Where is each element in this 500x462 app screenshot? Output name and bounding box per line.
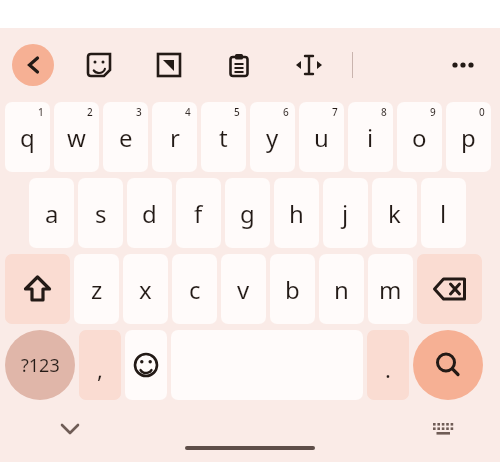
button[interactable]: Search [413, 330, 483, 400]
button[interactable]: Clipboard [222, 48, 256, 82]
button[interactable]: Move cursor [292, 48, 326, 82]
button[interactable]: Switch keyboard [426, 414, 460, 448]
staticText: k [388, 197, 401, 230]
button[interactable]: o [397, 102, 442, 172]
button[interactable]: y [250, 102, 295, 172]
staticText: 2 [87, 105, 93, 119]
button[interactable]: Backspace [417, 254, 482, 324]
button[interactable]: GIF [152, 48, 186, 82]
button[interactable]: Hide keyboard [52, 413, 88, 449]
staticText: a [45, 197, 59, 230]
button[interactable]: u [299, 102, 344, 172]
button[interactable]: k [372, 178, 417, 248]
button[interactable]: m [368, 254, 413, 324]
staticText: 0 [479, 105, 485, 119]
staticText: m [379, 273, 402, 306]
staticText: x [139, 273, 152, 306]
staticText: 9 [430, 105, 436, 119]
button[interactable]: s [78, 178, 123, 248]
staticText: 7 [332, 105, 338, 119]
staticText: u [314, 121, 329, 154]
staticText: n [334, 273, 349, 306]
button[interactable]: q [5, 102, 50, 172]
button[interactable]: , [79, 330, 121, 400]
staticText: f [194, 197, 203, 230]
button[interactable]: d [127, 178, 172, 248]
staticText: z [91, 273, 103, 306]
button[interactable]: Back [12, 44, 54, 86]
button[interactable]: More options [446, 48, 480, 82]
button[interactable]: a [29, 178, 74, 248]
staticText: j [342, 197, 349, 230]
button[interactable]: h [274, 178, 319, 248]
button[interactable]: x [123, 254, 168, 324]
staticText: t [219, 121, 228, 154]
button[interactable]: Shift [5, 254, 70, 324]
staticText: d [142, 197, 157, 230]
staticText: b [285, 273, 300, 306]
button[interactable]: i [348, 102, 393, 172]
staticText: q [20, 121, 35, 154]
button[interactable]: p [446, 102, 491, 172]
button[interactable]: Emoji [125, 330, 167, 400]
button[interactable]: ?123 [5, 330, 75, 400]
button[interactable]: Stickers [82, 48, 116, 82]
staticText: l [440, 197, 447, 230]
button[interactable]: e [103, 102, 148, 172]
button[interactable]: . [367, 330, 409, 400]
button[interactable]: c [172, 254, 217, 324]
staticText: i [367, 121, 374, 154]
button[interactable]: l [421, 178, 466, 248]
button[interactable]: j [323, 178, 368, 248]
button[interactable]: f [176, 178, 221, 248]
button[interactable]: z [74, 254, 119, 324]
staticText: r [170, 121, 180, 154]
button[interactable]: w [54, 102, 99, 172]
staticText: w [67, 121, 86, 154]
staticText: ?123 [21, 353, 60, 378]
staticText: . [385, 354, 391, 384]
staticText: o [412, 121, 427, 154]
staticText: c [189, 273, 201, 306]
button[interactable]: t [201, 102, 246, 172]
staticText: 6 [283, 105, 289, 119]
button[interactable]: n [319, 254, 364, 324]
staticText: , [97, 354, 103, 384]
button[interactable]: r [152, 102, 197, 172]
staticText: 8 [381, 105, 387, 119]
staticText: s [95, 197, 107, 230]
staticText: 5 [234, 105, 240, 119]
staticText: y [266, 121, 279, 154]
staticText: h [289, 197, 304, 230]
staticText: 3 [136, 105, 142, 119]
staticText: e [119, 121, 133, 154]
staticText: v [237, 273, 250, 306]
staticText: p [461, 121, 476, 154]
staticText: g [240, 197, 255, 230]
button[interactable]: g [225, 178, 270, 248]
button[interactable]: v [221, 254, 266, 324]
staticText: 4 [185, 105, 191, 119]
button[interactable]: b [270, 254, 315, 324]
staticText: 1 [38, 105, 44, 119]
